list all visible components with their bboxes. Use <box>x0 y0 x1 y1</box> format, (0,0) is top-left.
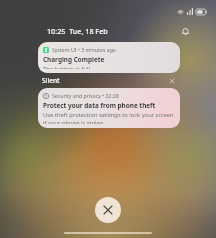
button[interactable]: Security and privacy • 02:28 <box>38 88 180 128</box>
button[interactable]: Clear silent notifications <box>166 75 177 86</box>
staticText: Protect your data from phone theft <box>43 101 156 110</box>
staticText: System UI • 3 minutes ago <box>52 46 116 53</box>
staticText: The battery is full <box>43 65 91 69</box>
button[interactable]: Notification settings <box>178 24 192 38</box>
button[interactable]: Clear all notifications <box>95 197 121 223</box>
staticText: Silent <box>42 76 60 85</box>
staticText: 10:25 Tue, 18 Feb <box>47 26 108 36</box>
staticText: Security and privacy • 02:28 <box>52 92 119 99</box>
staticText: Charging Complete <box>43 55 105 64</box>
staticText: Use theft protection settings to lock yo… <box>43 111 175 124</box>
button[interactable]: System UI • 3 minutes ago <box>38 42 180 73</box>
